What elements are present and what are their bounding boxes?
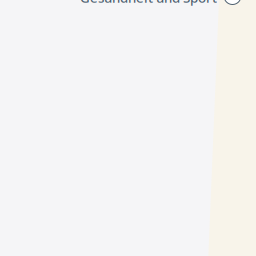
staticText: Gesundheit und Sport <box>80 0 217 6</box>
button[interactable]: Profil <box>224 0 241 4</box>
button[interactable]: Gesundheit und Sport <box>80 0 217 6</box>
button[interactable]: Zusammenfassung <box>0 0 256 256</box>
